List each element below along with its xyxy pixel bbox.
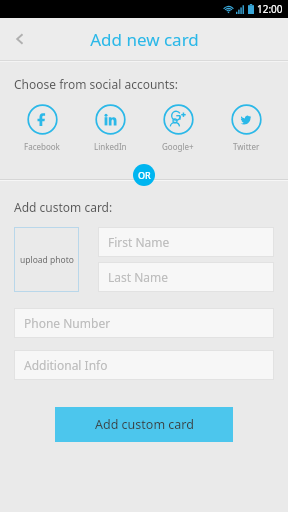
button[interactable]: upload photo [14, 227, 79, 292]
staticText: upload photo [20, 254, 74, 266]
button[interactable]: Facebook [8, 104, 76, 152]
button[interactable]: Back [0, 19, 40, 59]
staticText: Twitter [233, 141, 260, 152]
staticText: Google+ [162, 141, 194, 152]
staticText: Phone Number [24, 315, 111, 331]
staticText: Add custom card [95, 416, 194, 433]
button[interactable]: Additional Info [14, 350, 274, 380]
staticText: OR [138, 169, 151, 181]
staticText: First Name [108, 234, 170, 250]
button[interactable]: Phone Number [14, 308, 274, 338]
button[interactable]: Add custom card [55, 407, 233, 442]
button[interactable]: LinkedIn [76, 104, 144, 152]
staticText: Choose from social accounts: [14, 76, 179, 92]
staticText: Last Name [108, 269, 169, 285]
button[interactable]: First Name [98, 227, 274, 257]
staticText: Add custom card: [14, 199, 113, 215]
button[interactable]: OR [133, 164, 155, 186]
button[interactable]: Last Name [98, 262, 274, 292]
button[interactable]: Twitter [212, 104, 280, 152]
staticText: Additional Info [24, 357, 108, 373]
staticText: Add new card [90, 28, 199, 51]
button[interactable]: Google+ [144, 104, 212, 152]
staticText: 12:00 [257, 2, 283, 16]
staticText: Facebook [24, 141, 60, 152]
staticText: LinkedIn [94, 141, 127, 152]
